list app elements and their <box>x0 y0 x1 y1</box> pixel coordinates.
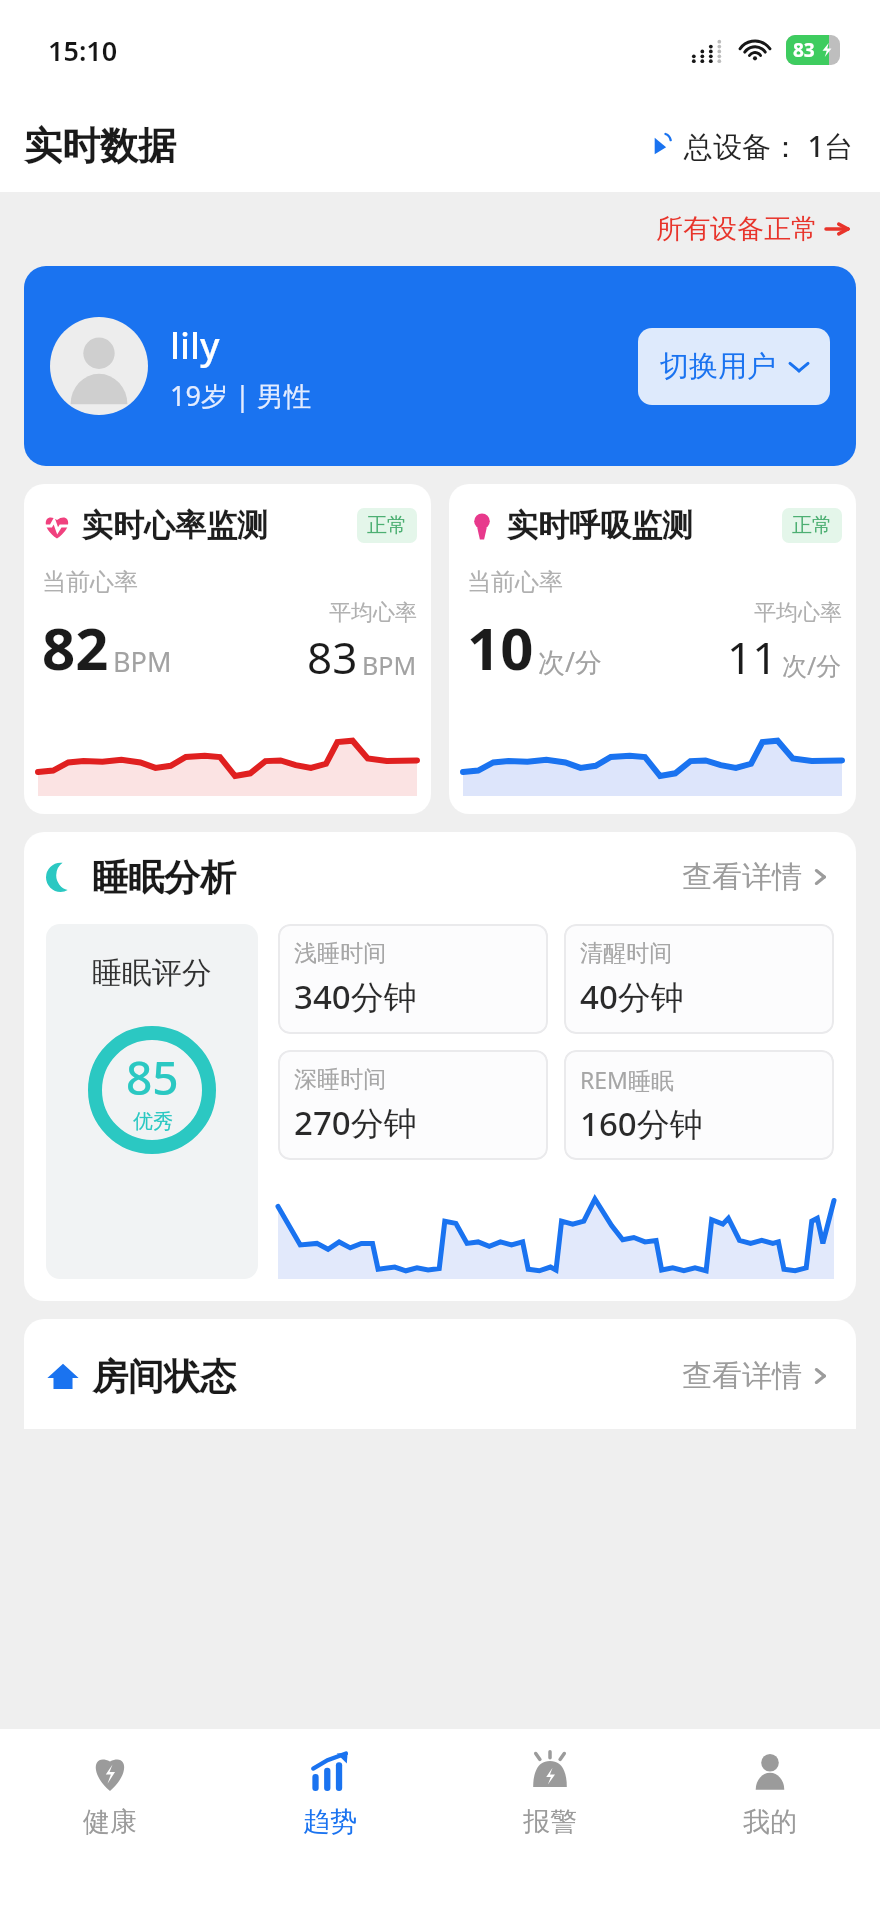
staticText: 实时数据 <box>24 122 176 170</box>
staticText: 270分钟 <box>294 1100 417 1145</box>
other: Devices <box>650 133 676 159</box>
staticText: 19岁 | 男性 <box>170 377 311 414</box>
staticText: REM睡眠 <box>580 1064 674 1095</box>
staticText: 次/分 <box>782 648 842 682</box>
button[interactable]: 清醒时间 <box>564 924 834 1034</box>
button[interactable]: 查看详情 <box>678 1353 834 1399</box>
staticText: BPM <box>113 643 172 680</box>
button[interactable]: 报警 <box>440 1729 660 1907</box>
staticText: 160分钟 <box>580 1101 703 1146</box>
staticText: 查看详情 <box>682 858 802 896</box>
staticText: 报警 <box>523 1805 577 1839</box>
button[interactable]: 浅睡时间 <box>278 924 548 1034</box>
staticText: 睡眠分析 <box>92 855 236 900</box>
staticText: 平均心率 <box>754 599 842 627</box>
staticText: 切换用户 <box>660 348 776 385</box>
other: Home <box>46 1359 80 1393</box>
staticText: 83 <box>793 37 815 63</box>
staticText: 15:10 <box>48 32 118 69</box>
staticText: 浅睡时间 <box>294 939 386 968</box>
staticText: 健康 <box>83 1805 137 1839</box>
staticText: 340分钟 <box>294 974 417 1019</box>
button[interactable]: 深睡时间 <box>278 1050 548 1160</box>
staticText: 实时呼吸监测 <box>507 506 693 545</box>
staticText: 当前心率 <box>467 567 563 597</box>
staticText: BPM <box>362 648 417 682</box>
button[interactable]: lily <box>24 266 856 466</box>
staticText: 当前心率 <box>42 567 138 597</box>
staticText: 实时心率监测 <box>82 506 268 545</box>
staticText: 10 <box>467 608 534 687</box>
staticText: 11 <box>727 627 778 687</box>
button[interactable]: REM睡眠 <box>564 1050 834 1160</box>
staticText: 清醒时间 <box>580 939 672 968</box>
button[interactable]: 健康 <box>0 1729 220 1907</box>
staticText: 优秀 <box>133 1109 173 1134</box>
staticText: 查看详情 <box>682 1357 802 1395</box>
staticText: 房间状态 <box>92 1354 236 1399</box>
staticText: 83 <box>307 627 358 687</box>
staticText: lily <box>170 319 220 369</box>
button[interactable]: 查看详情 <box>678 854 834 900</box>
button[interactable]: 我的 <box>660 1729 880 1907</box>
button[interactable]: 实时呼吸监测 <box>449 484 856 814</box>
button[interactable]: 实时心率监测 <box>24 484 431 814</box>
staticText: 平均心率 <box>329 599 417 627</box>
staticText: 深睡时间 <box>294 1065 386 1094</box>
staticText: 我的 <box>743 1805 797 1839</box>
staticText: 正常 <box>367 513 407 538</box>
button[interactable]: 切换用户 <box>638 328 830 405</box>
staticText: 40分钟 <box>580 974 684 1019</box>
staticText: 所有设备正常 <box>656 212 818 246</box>
staticText: 总设备： 1台 <box>684 126 854 166</box>
staticText: 85 <box>126 1046 179 1109</box>
staticText: 睡眠评分 <box>92 954 212 992</box>
button[interactable]: 趋势 <box>220 1729 440 1907</box>
staticText: 趋势 <box>303 1805 357 1839</box>
staticText: 正常 <box>792 513 832 538</box>
staticText: 82 <box>42 608 109 687</box>
button[interactable]: 所有设备正常 <box>650 206 854 252</box>
staticText: 次/分 <box>538 643 603 680</box>
